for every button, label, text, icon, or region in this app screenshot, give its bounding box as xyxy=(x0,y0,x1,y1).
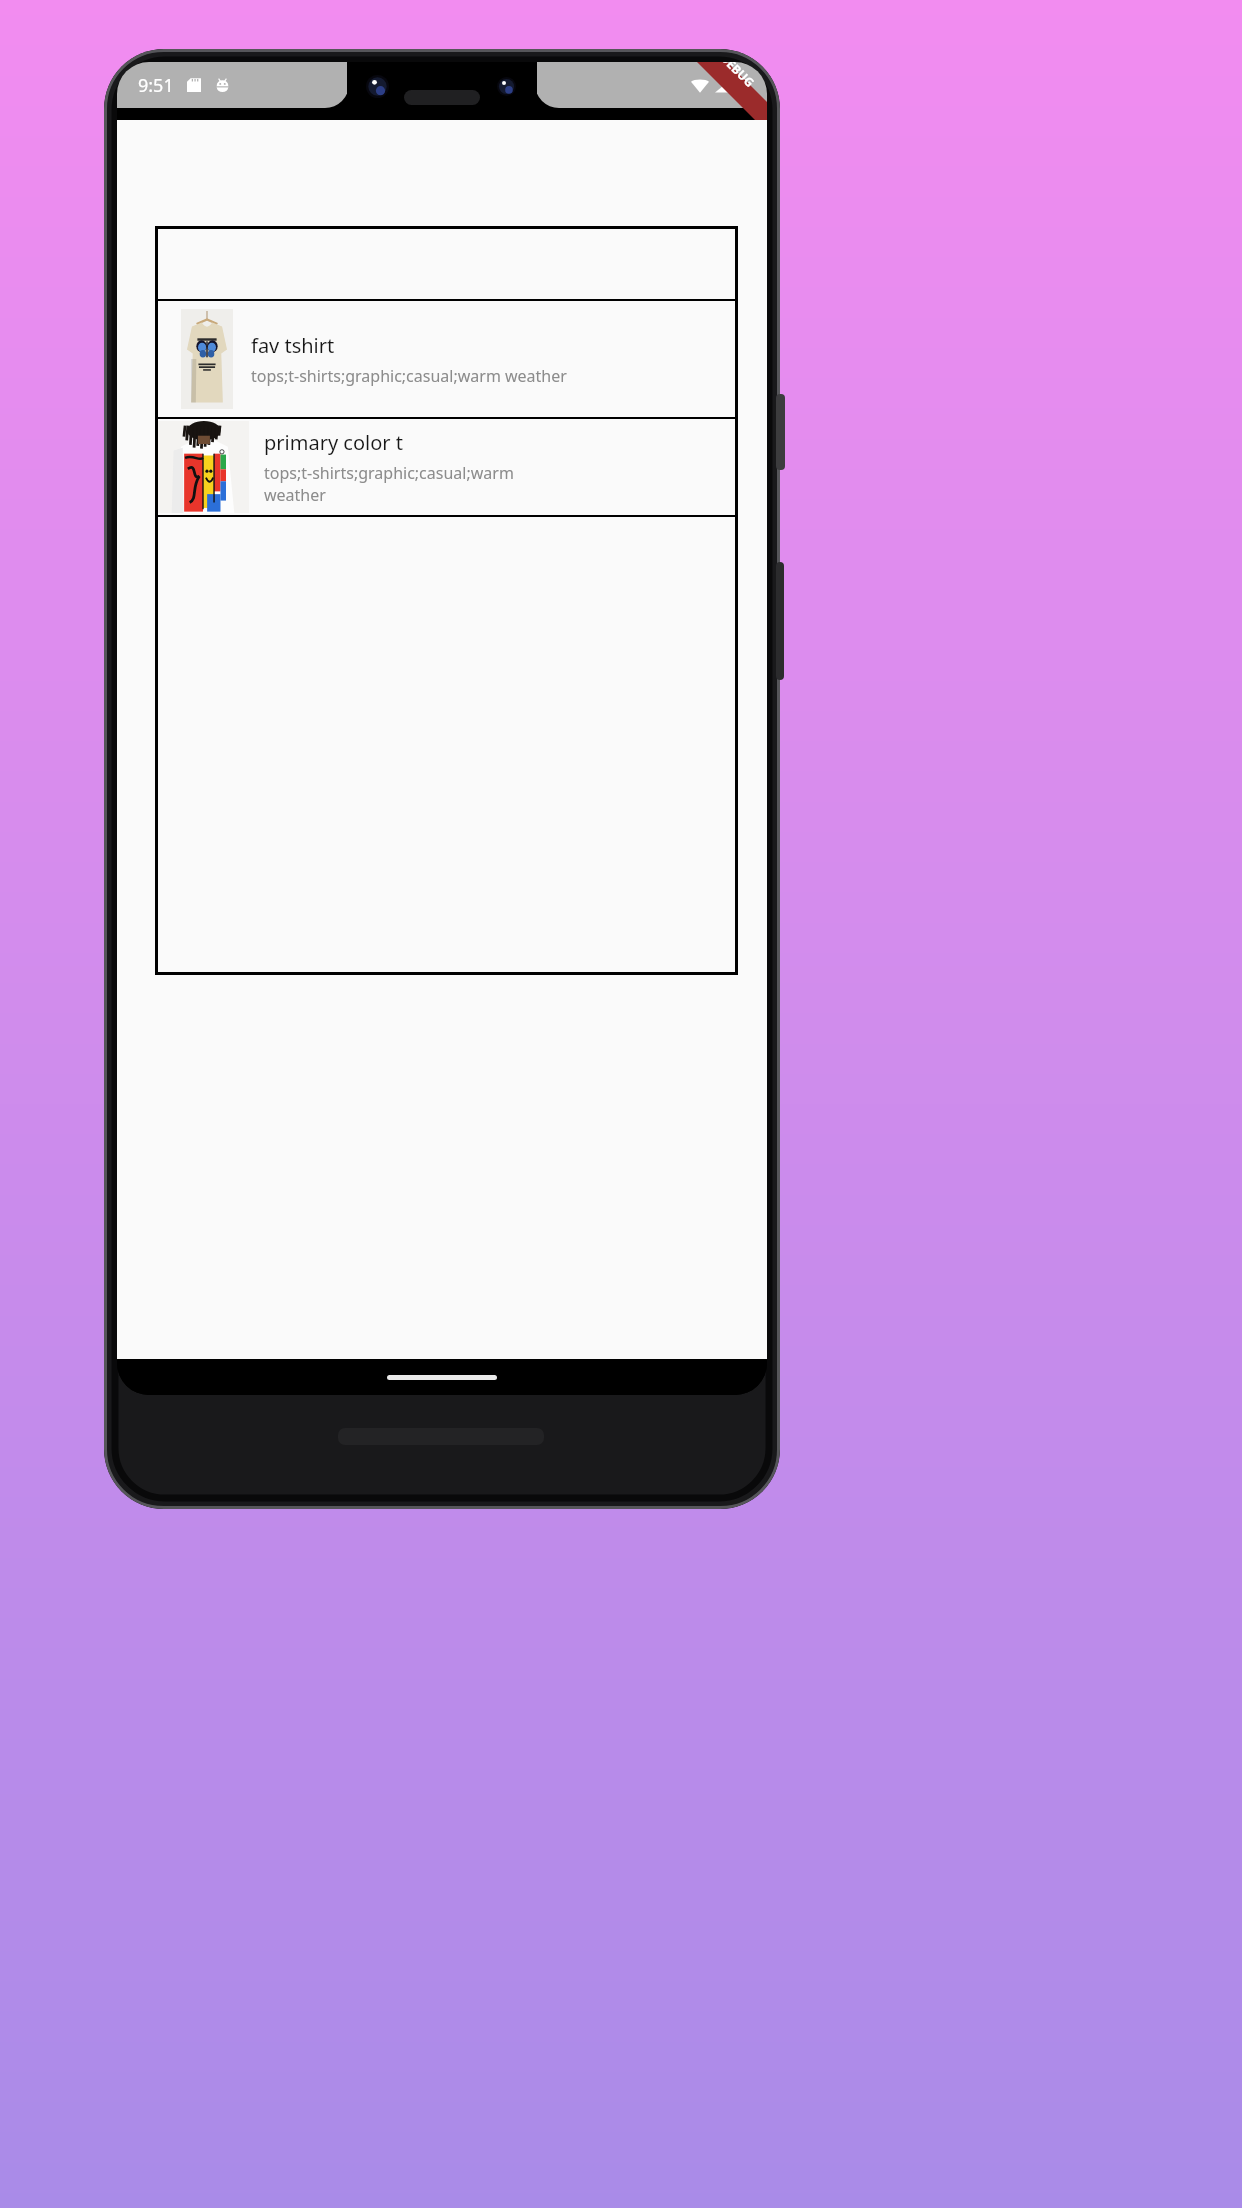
button[interactable] xyxy=(155,226,738,299)
staticText: tops;t-shirts;graphic;casual;warm xyxy=(264,462,514,484)
staticText: weather xyxy=(264,484,326,506)
staticText: primary color t xyxy=(264,429,403,456)
staticText: 9:51 xyxy=(138,73,174,98)
staticText: DEBUG xyxy=(717,62,758,90)
staticText: fav tshirt xyxy=(251,332,335,359)
button[interactable]: primary color t xyxy=(155,419,738,515)
button[interactable]: fav tshirt xyxy=(155,301,738,417)
staticText: tops;t-shirts;graphic;casual;warm weathe… xyxy=(251,365,567,387)
